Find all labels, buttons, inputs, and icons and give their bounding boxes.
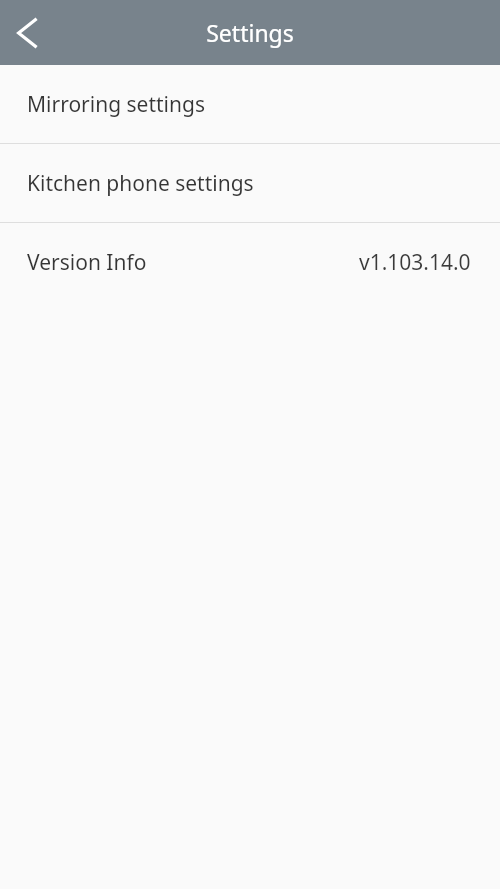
staticText: v1.103.14.0 xyxy=(359,248,471,277)
staticText: Settings xyxy=(0,17,500,48)
button[interactable]: Version Info xyxy=(0,223,500,301)
button[interactable]: Kitchen phone settings xyxy=(0,144,500,222)
staticText: Mirroring settings xyxy=(27,90,205,119)
button[interactable]: Mirroring settings xyxy=(0,65,500,143)
staticText: Kitchen phone settings xyxy=(27,169,254,198)
staticText: Version Info xyxy=(27,248,147,277)
button[interactable]: Back xyxy=(0,0,54,65)
